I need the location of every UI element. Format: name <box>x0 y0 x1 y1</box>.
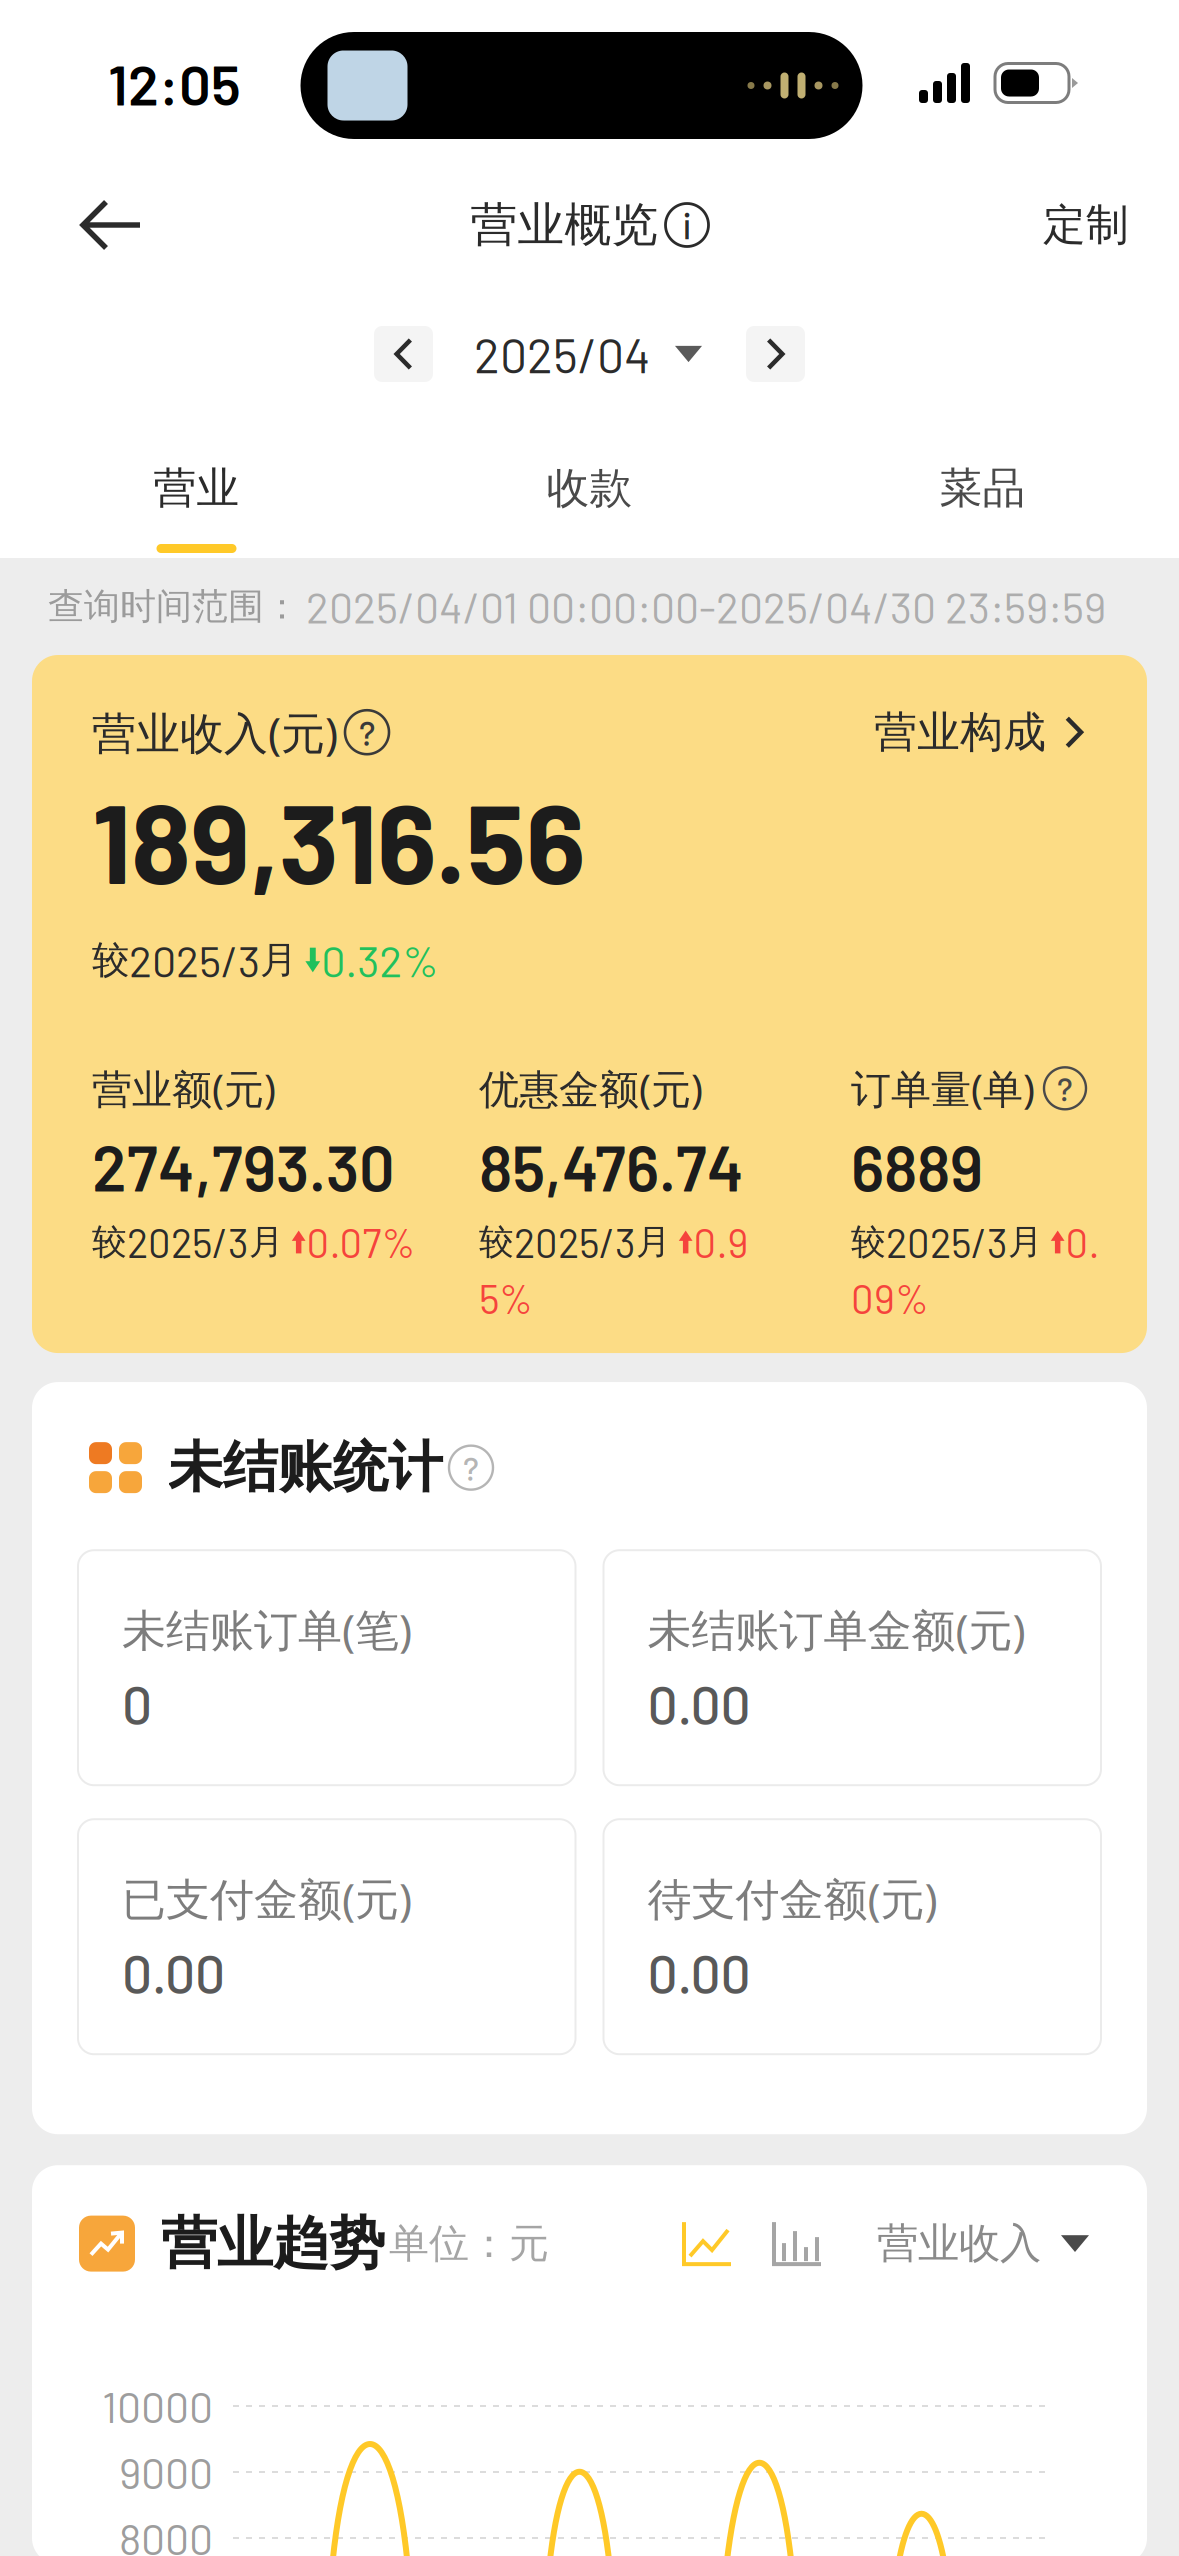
staticText: 营业趋势 <box>161 2209 385 2278</box>
staticText: 待支付金额(元) <box>647 1869 937 1927</box>
staticText: 营业额(元) <box>92 1062 276 1115</box>
staticText: 订单量(单) <box>851 1062 1035 1115</box>
staticText: 0. <box>1065 1218 1099 1266</box>
staticText: 营业 <box>153 462 239 514</box>
staticText: 09% <box>851 1274 929 1322</box>
staticText: 2025/04/01 00:00:00-2025/04/30 23:59:59 <box>306 581 1106 632</box>
button[interactable]: 营业构成 <box>874 706 1084 758</box>
staticText: 未结账统计 <box>168 1434 443 1501</box>
staticText: 2025/3 <box>129 934 260 986</box>
staticText: 8000 <box>119 2512 213 2556</box>
staticText: 0.9 <box>693 1218 748 1266</box>
staticText: 274,793.30 <box>92 1129 395 1204</box>
staticText: 2025/3 <box>127 1218 249 1266</box>
staticText: 月 <box>260 937 297 983</box>
staticText: 较 <box>851 1221 886 1263</box>
staticText: 0.07% <box>306 1218 415 1266</box>
button[interactable]: 下个月 <box>746 326 805 382</box>
button[interactable]: 折线图 <box>681 2219 734 2268</box>
staticText: 0.00 <box>122 1940 225 2004</box>
staticText: 未结账订单金额(元) <box>647 1600 1025 1658</box>
staticText: 查询时间范围： <box>48 584 300 629</box>
staticText: 0 <box>122 1671 152 1735</box>
button[interactable]: 柱状图 <box>734 2219 824 2268</box>
staticText: 0.32% <box>321 934 438 986</box>
staticText: 0.00 <box>647 1940 750 2004</box>
staticText: 较 <box>92 937 129 983</box>
staticText: ? <box>463 1448 479 1487</box>
staticText: 已支付金额(元) <box>122 1869 412 1927</box>
staticText: 较 <box>92 1221 127 1263</box>
staticText: 单位：元 <box>389 2219 549 2268</box>
staticText: 2025/3 <box>886 1218 1008 1266</box>
staticText: 营业收入 <box>877 2218 1041 2269</box>
staticText: 9000 <box>119 2446 213 2498</box>
button[interactable]: 上个月 <box>374 326 433 382</box>
button[interactable]: 收款 <box>393 424 786 558</box>
staticText: 10000 <box>102 2380 213 2432</box>
staticText: 12:05 <box>108 49 241 117</box>
staticText: 未结账订单(笔) <box>122 1600 412 1658</box>
staticText: 0.00 <box>647 1671 750 1735</box>
staticText: 6889 <box>851 1129 983 1204</box>
staticText: 营业概览 <box>470 196 658 254</box>
staticText: ? <box>1057 1069 1073 1108</box>
staticText: 较 <box>479 1221 514 1263</box>
staticText: 月 <box>636 1221 671 1263</box>
staticText: 5% <box>479 1274 533 1322</box>
staticText: 月 <box>249 1221 284 1263</box>
button[interactable]: 定制 <box>979 166 1129 284</box>
staticText: 定制 <box>1043 199 1129 251</box>
staticText: 菜品 <box>939 462 1025 514</box>
staticText: 营业收入(元) <box>92 703 338 761</box>
staticText: 85,476.74 <box>479 1129 744 1204</box>
staticText: 收款 <box>546 462 632 514</box>
button[interactable]: 返回 <box>51 166 171 284</box>
staticText: 2025/3 <box>514 1218 636 1266</box>
staticText: 优惠金额(元) <box>479 1062 703 1115</box>
button[interactable]: 营业收入 <box>824 2218 1089 2269</box>
staticText: 营业构成 <box>874 706 1046 758</box>
staticText: i <box>682 204 691 246</box>
button[interactable]: 营业 <box>0 424 393 558</box>
button[interactable]: 菜品 <box>786 424 1179 558</box>
staticText: ? <box>359 712 375 753</box>
staticText: 2025/04 <box>474 325 650 383</box>
staticText: 月 <box>1008 1221 1043 1263</box>
staticText: 189,316.56 <box>92 773 585 906</box>
